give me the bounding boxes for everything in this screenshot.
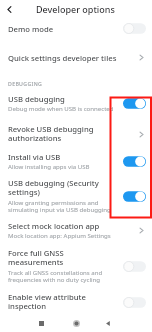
staticText: Allow granting permissions and simulatin… (8, 198, 120, 214)
staticText: Track all GNSS constellations and freque… (8, 268, 120, 284)
button[interactable]: Install via USB (0, 151, 152, 175)
button[interactable]: Quick settings developer tiles (0, 48, 152, 67)
button[interactable]: Switch on (123, 155, 146, 168)
staticText: Demo mode (8, 24, 54, 34)
staticText: Allow installing apps via USB (8, 162, 90, 170)
button[interactable]: Switch on (123, 190, 146, 203)
button[interactable]: Enable view attribute inspection (0, 290, 152, 314)
button[interactable]: Back (98, 314, 118, 332)
staticText: Mock location app: Appium Settings (8, 231, 111, 239)
staticText: USB debugging (8, 94, 65, 104)
button[interactable]: Navigate up (0, 0, 18, 18)
staticText: USB debugging (Security settings) (8, 178, 120, 198)
staticText: Developer options (36, 3, 115, 15)
button[interactable]: Recent apps (31, 314, 51, 332)
button[interactable]: Switch off (123, 260, 146, 273)
button[interactable]: Force full GNSS measurements (0, 247, 152, 288)
button[interactable]: USB debugging (0, 93, 152, 117)
staticText: Enable view attribute inspection (8, 292, 120, 312)
button[interactable]: Home (66, 314, 86, 332)
staticText: Quick settings developer tiles (8, 53, 117, 63)
staticText: Select mock location app (8, 221, 100, 231)
button[interactable]: Select mock location app (0, 220, 152, 244)
button[interactable]: Revoke USB debugging authorizations (0, 120, 152, 148)
staticText: Revoke USB debugging authorizations (8, 124, 134, 144)
button[interactable]: Switch on (123, 97, 146, 110)
staticText: Force full GNSS measurements (8, 248, 120, 268)
button[interactable]: USB debugging (Security settings) (0, 177, 152, 218)
staticText: Debug mode when USB is connected (8, 104, 114, 112)
staticText: DEBUGGING (8, 80, 43, 87)
button[interactable]: Switch off (123, 296, 146, 309)
button[interactable]: Switch off (123, 22, 146, 35)
button[interactable]: Demo mode (0, 18, 152, 39)
staticText: Install via USB (8, 152, 61, 162)
